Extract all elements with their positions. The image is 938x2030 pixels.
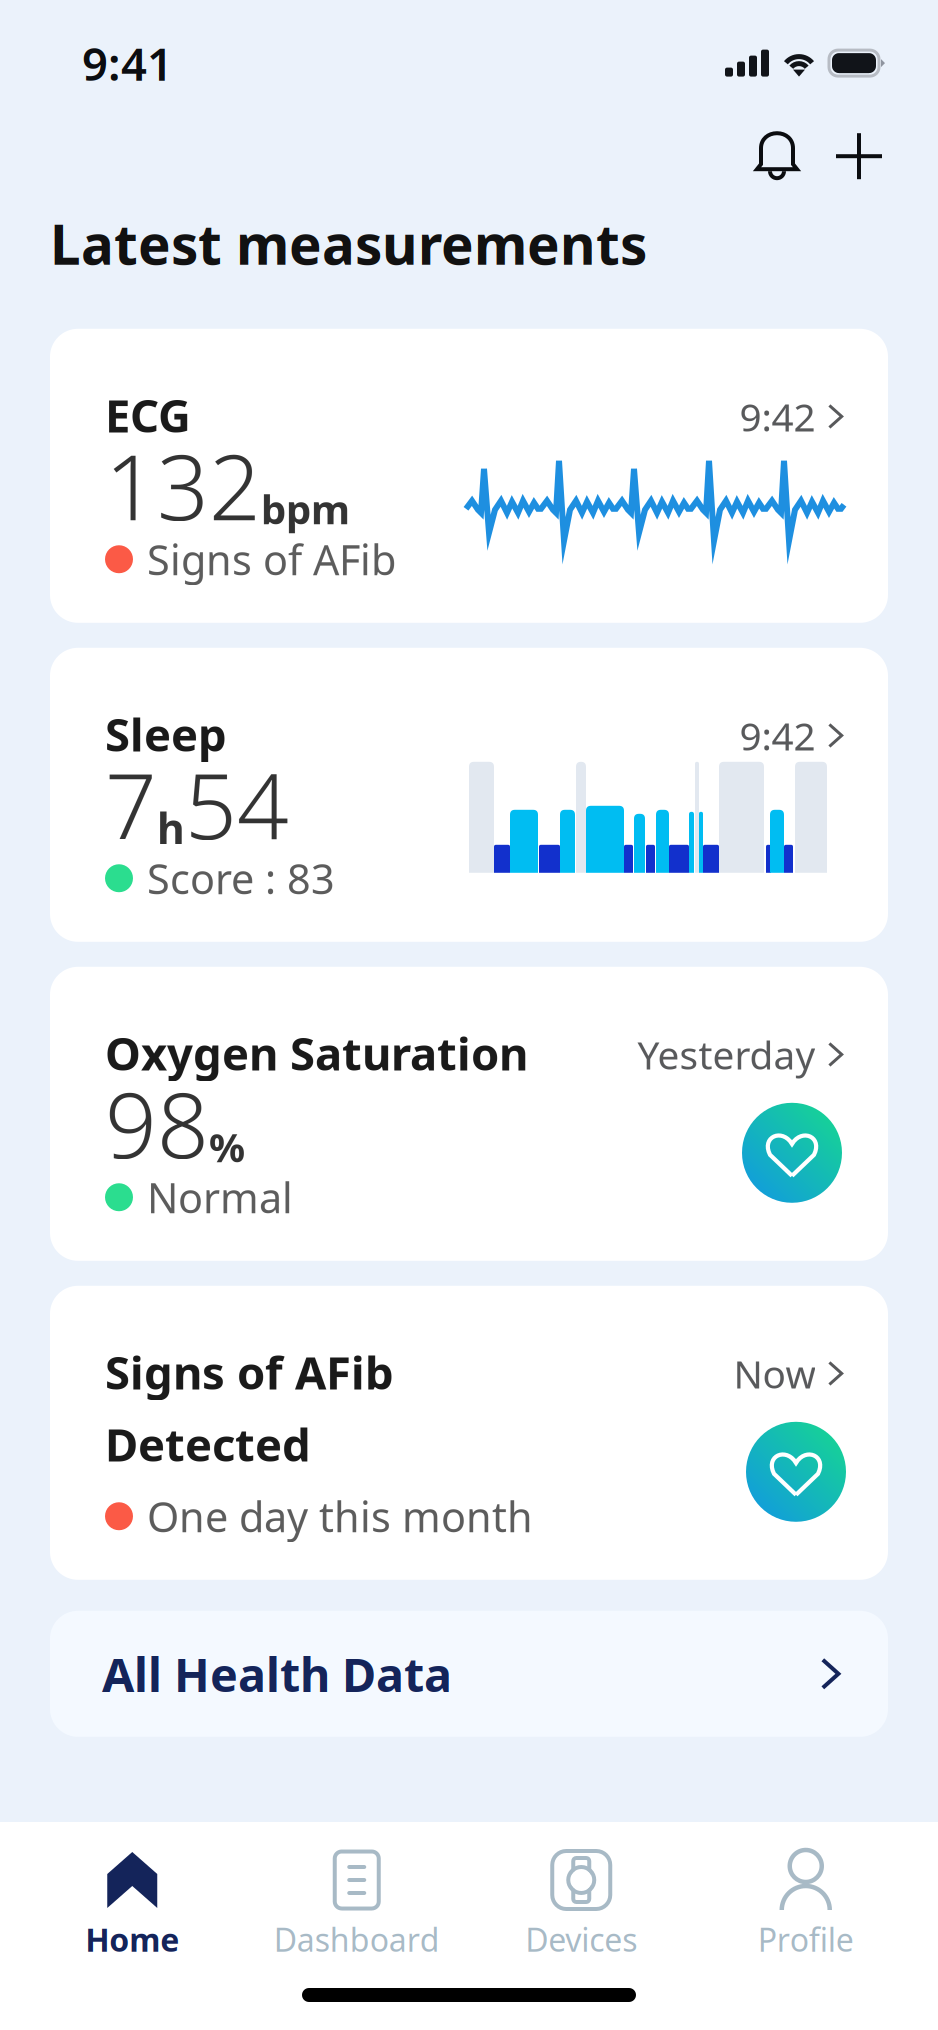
button[interactable]: Dashboard xyxy=(244,1850,469,1960)
button[interactable]: Signs of AFib xyxy=(50,1286,888,1580)
staticText: Home xyxy=(85,1918,179,1960)
staticText: 9:42 xyxy=(739,710,815,761)
staticText: 9:42 xyxy=(739,391,815,442)
staticText: Signs of AFib xyxy=(147,532,396,587)
staticText: Profile xyxy=(758,1918,854,1960)
staticText: 54 xyxy=(185,744,289,864)
staticText: 7 xyxy=(105,744,157,864)
button[interactable]: Profile xyxy=(693,1850,918,1960)
staticText: Devices xyxy=(525,1918,637,1960)
button[interactable]: All Health Data xyxy=(50,1605,888,1737)
staticText: 9:41 xyxy=(82,33,173,93)
staticText: Oxygen Saturation xyxy=(105,1023,528,1083)
staticText: Signs of AFib xyxy=(105,1342,394,1402)
button[interactable]: Sleep xyxy=(50,648,888,942)
staticText: Now xyxy=(733,1348,815,1399)
staticText: h xyxy=(157,799,185,856)
button[interactable]: Oxygen Saturation xyxy=(50,967,888,1261)
button[interactable]: Devices xyxy=(469,1850,693,1960)
staticText: 98 xyxy=(105,1063,209,1183)
staticText: Yesterday xyxy=(637,1029,815,1080)
button[interactable]: ECG xyxy=(50,329,888,623)
staticText: All Health Data xyxy=(102,1643,452,1705)
staticText: Dashboard xyxy=(274,1918,440,1960)
staticText: 132 xyxy=(105,425,261,545)
button[interactable]: Notifications xyxy=(738,123,816,189)
button[interactable]: Home xyxy=(20,1850,244,1960)
button[interactable]: Add xyxy=(816,123,902,189)
staticText: Normal xyxy=(147,1170,293,1225)
staticText: bpm xyxy=(261,482,350,535)
staticText: ECG xyxy=(105,385,191,445)
staticText: Score : 83 xyxy=(147,851,335,906)
staticText: Latest measurements xyxy=(50,207,647,280)
staticText: Detected xyxy=(105,1414,311,1474)
staticText: Sleep xyxy=(105,704,227,764)
staticText: One day this month xyxy=(147,1489,533,1544)
staticText: % xyxy=(209,1120,245,1173)
